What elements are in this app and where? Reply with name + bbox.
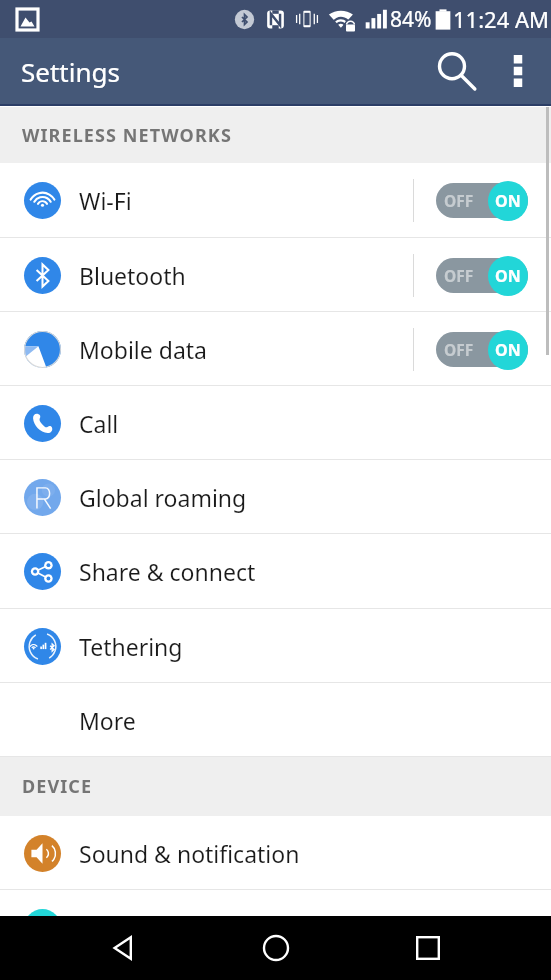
button[interactable]: Sound & notification	[0, 816, 551, 890]
staticText: Mobile data	[79, 334, 207, 365]
button[interactable]: Mobile data	[0, 312, 551, 386]
button[interactable]: Recents	[398, 918, 458, 978]
staticText: Global roaming	[79, 482, 247, 513]
staticText: 84%	[390, 5, 432, 34]
button[interactable]: Back	[93, 918, 153, 978]
button[interactable]: Wi-Fi	[0, 163, 551, 238]
button[interactable]: More	[0, 683, 551, 757]
button[interactable]: Tethering	[0, 609, 551, 683]
button[interactable]: Call	[0, 386, 551, 460]
button[interactable]: Bluetooth	[0, 238, 551, 312]
staticText: More	[79, 705, 136, 736]
staticText: Bluetooth	[79, 260, 186, 291]
button[interactable]: Search	[432, 45, 484, 97]
staticText: Tethering	[79, 631, 183, 662]
button[interactable]: OFF	[436, 180, 528, 221]
staticText: WIRELESS NETWORKS	[22, 123, 232, 148]
staticText: Call	[79, 408, 119, 439]
staticText: DEVICE	[22, 774, 93, 799]
staticText: ON	[495, 190, 521, 212]
button[interactable]: Display	[0, 890, 551, 916]
staticText: OFF	[444, 265, 474, 286]
button[interactable]: OFF	[436, 255, 528, 296]
staticText: Sound & notification	[79, 838, 300, 869]
staticText: OFF	[444, 339, 474, 360]
staticText: OFF	[444, 190, 474, 211]
staticText: 11:24 AM	[453, 4, 549, 34]
button[interactable]: More options	[492, 45, 544, 97]
staticText: Wi-Fi	[79, 185, 132, 216]
button[interactable]: Global roaming	[0, 460, 551, 534]
staticText: Share & connect	[79, 556, 256, 587]
staticText: ON	[495, 339, 521, 361]
button[interactable]: Share & connect	[0, 534, 551, 609]
button[interactable]: Home	[246, 918, 306, 978]
button[interactable]: OFF	[436, 329, 528, 370]
staticText: Settings	[21, 54, 120, 89]
staticText: ON	[495, 265, 521, 287]
